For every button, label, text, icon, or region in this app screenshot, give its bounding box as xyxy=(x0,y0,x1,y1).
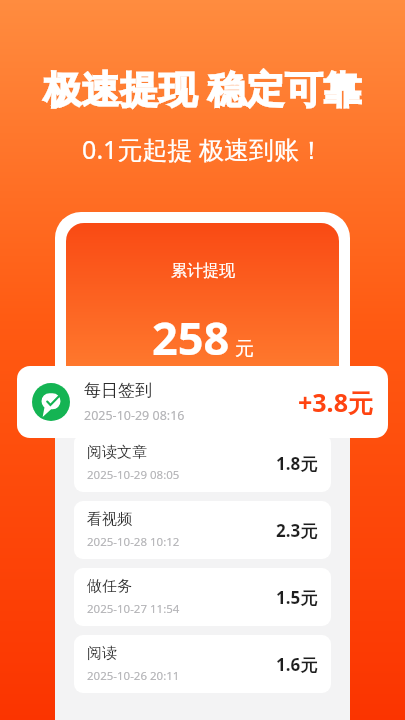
button[interactable]: 阅读 xyxy=(74,635,331,693)
staticText: 2025-10-27 11:54 xyxy=(87,601,180,617)
button[interactable]: 做任务 xyxy=(74,568,331,626)
staticText: 阅读 xyxy=(87,644,117,663)
staticText: 2025-10-28 10:12 xyxy=(87,534,180,550)
staticText: 做任务 xyxy=(87,577,132,596)
staticText: 0.1元起提 极速到账！ xyxy=(82,132,324,166)
staticText: 2025-10-29 08:05 xyxy=(87,467,180,483)
staticText: 2025-10-29 08:16 xyxy=(84,407,185,424)
other: 每日签到 xyxy=(32,383,70,421)
button[interactable]: 看视频 xyxy=(74,501,331,559)
button[interactable]: 阅读文章 xyxy=(74,434,331,492)
staticText: 1.8元 xyxy=(276,452,318,475)
staticText: 1.5元 xyxy=(276,586,318,609)
staticText: +3.8元 xyxy=(298,385,373,419)
staticText: 1.6元 xyxy=(276,653,318,676)
staticText: 258 xyxy=(152,307,230,368)
staticText: 每日签到 xyxy=(84,380,152,401)
staticText: 看视频 xyxy=(87,510,132,529)
staticText: 元 xyxy=(235,337,254,361)
staticText: 累计提现 xyxy=(171,261,235,281)
staticText: 极速提现 稳定可靠 xyxy=(43,62,362,114)
staticText: 阅读文章 xyxy=(87,443,147,462)
staticText: 2025-10-26 20:11 xyxy=(87,668,180,684)
staticText: 2.3元 xyxy=(276,519,318,542)
button[interactable]: 每日签到 xyxy=(17,366,388,438)
